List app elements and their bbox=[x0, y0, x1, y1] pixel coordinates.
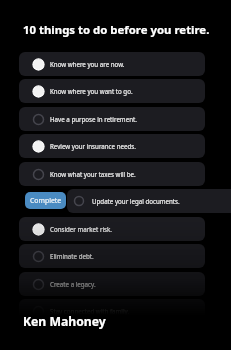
staticText: Review your insurance needs. bbox=[50, 142, 136, 150]
staticText: Update your legal documents. bbox=[92, 197, 180, 205]
staticText: Eliminate debt. bbox=[50, 252, 94, 260]
button[interactable]: Review your insurance needs. bbox=[19, 134, 205, 158]
button[interactable]: Create a legacy. bbox=[19, 272, 205, 296]
button[interactable]: Consider market risk. bbox=[19, 217, 205, 241]
staticText: Stay connected with family. bbox=[50, 307, 130, 315]
staticText: Know where you want to go. bbox=[50, 87, 133, 95]
staticText: Know where you are now. bbox=[50, 60, 125, 68]
button[interactable]: Eliminate debt. bbox=[19, 244, 205, 268]
button[interactable]: Update your legal documents. bbox=[67, 189, 231, 213]
button[interactable]: Complete bbox=[25, 192, 66, 209]
staticText: Know what your taxes will be. bbox=[50, 170, 136, 178]
staticText: 10 things to do before you retire. bbox=[23, 22, 210, 38]
button[interactable]: Know what your taxes will be. bbox=[19, 162, 205, 186]
button[interactable]: Have a purpose in retirement. bbox=[19, 107, 205, 131]
staticText: Have a purpose in retirement. bbox=[50, 115, 137, 123]
staticText: Complete bbox=[30, 196, 62, 205]
staticText: Ken Mahoney bbox=[23, 313, 106, 330]
staticText: Consider market risk. bbox=[50, 225, 113, 233]
staticText: Create a legacy. bbox=[50, 280, 96, 288]
button[interactable]: Stay connected with family. bbox=[19, 299, 205, 323]
button[interactable]: Know where you want to go. bbox=[19, 79, 205, 103]
button[interactable]: Know where you are now. bbox=[19, 52, 205, 76]
